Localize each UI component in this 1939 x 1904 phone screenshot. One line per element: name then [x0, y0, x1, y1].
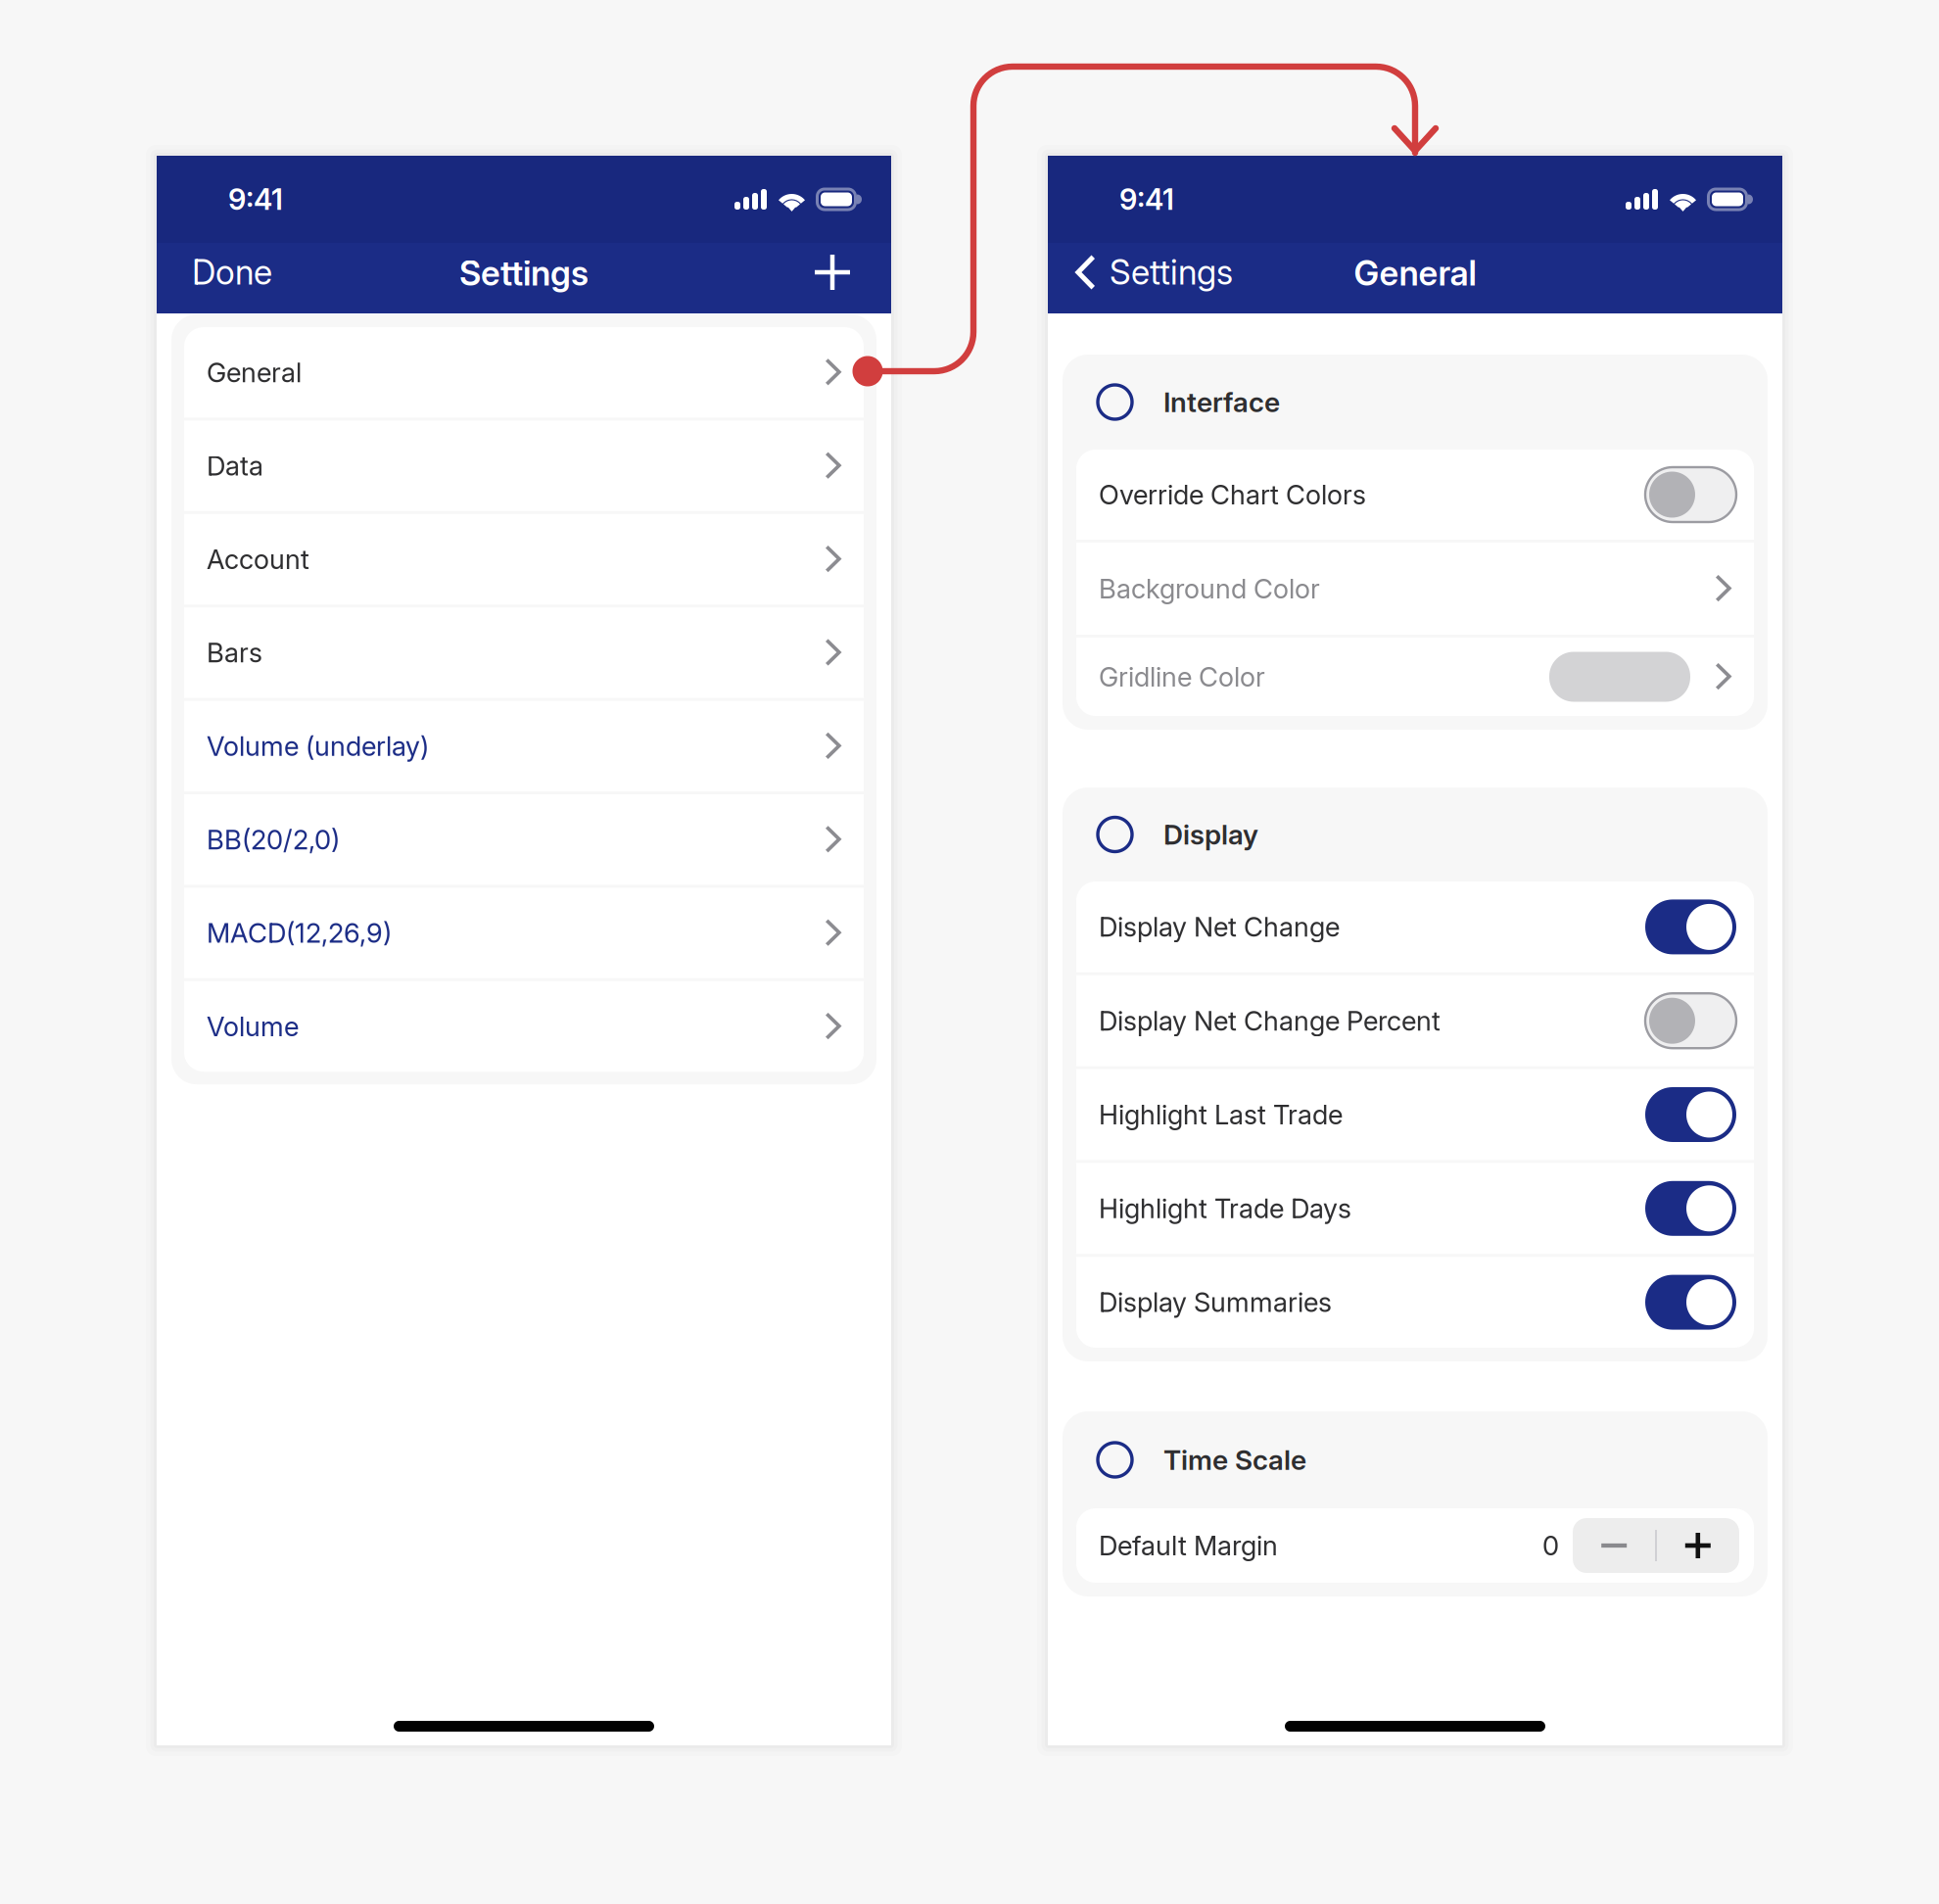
- button[interactable]: Volume: [184, 981, 864, 1072]
- staticText: Done: [192, 252, 272, 293]
- button[interactable]: Add: [809, 243, 856, 302]
- button[interactable]: Bars: [184, 607, 864, 698]
- staticText: Display: [1163, 818, 1258, 851]
- button[interactable]: Done: [186, 243, 278, 302]
- button[interactable]: Gridline Color: [1076, 638, 1754, 716]
- staticText: Default Margin: [1099, 1529, 1278, 1562]
- button[interactable]: Display Summaries: [1076, 1257, 1754, 1348]
- staticText: Settings: [1110, 252, 1233, 293]
- staticText: Gridline Color: [1099, 661, 1265, 693]
- button[interactable]: Data: [184, 421, 864, 511]
- staticText: Volume: [207, 1010, 299, 1043]
- button[interactable]: Display Net Change: [1076, 881, 1754, 972]
- staticText: Display Net Change Percent: [1099, 1005, 1441, 1037]
- staticText: General: [1354, 253, 1476, 294]
- staticText: Bars: [207, 637, 262, 669]
- staticText: BB(20/2,0): [207, 823, 340, 856]
- staticText: 9:41: [1119, 182, 1174, 217]
- staticText: Display Summaries: [1099, 1286, 1332, 1319]
- staticText: General: [207, 356, 302, 389]
- button[interactable]: Increase: [1657, 1518, 1739, 1573]
- staticText: Interface: [1163, 386, 1280, 419]
- staticText: 9:41: [228, 182, 283, 217]
- staticText: MACD(12,26,9): [207, 917, 392, 949]
- button[interactable]: Display Net Change Percent: [1076, 975, 1754, 1066]
- staticText: Highlight Trade Days: [1099, 1192, 1351, 1225]
- staticText: Time Scale: [1163, 1443, 1306, 1476]
- staticText: 0: [1542, 1529, 1559, 1562]
- staticText: Account: [207, 543, 309, 576]
- staticText: Background Color: [1099, 572, 1320, 605]
- staticText: Display Net Change: [1099, 911, 1340, 943]
- staticText: Volume (underlay): [207, 730, 429, 762]
- button[interactable]: Highlight Last Trade: [1076, 1069, 1754, 1160]
- staticText: Override Chart Colors: [1099, 478, 1366, 511]
- staticText: Settings: [459, 253, 589, 294]
- button[interactable]: Decrease: [1573, 1518, 1655, 1573]
- button[interactable]: Account: [184, 514, 864, 605]
- button[interactable]: Highlight Trade Days: [1076, 1163, 1754, 1254]
- button[interactable]: Background Color: [1076, 543, 1754, 635]
- button[interactable]: BB(20/2,0): [184, 794, 864, 885]
- staticText: Highlight Last Trade: [1099, 1098, 1343, 1131]
- button[interactable]: Override Chart Colors: [1076, 450, 1754, 540]
- staticText: Data: [207, 450, 263, 482]
- button[interactable]: MACD(12,26,9): [184, 888, 864, 978]
- button[interactable]: General: [184, 327, 864, 418]
- button[interactable]: Volume (underlay): [184, 701, 864, 791]
- button[interactable]: Settings: [1073, 243, 1233, 302]
